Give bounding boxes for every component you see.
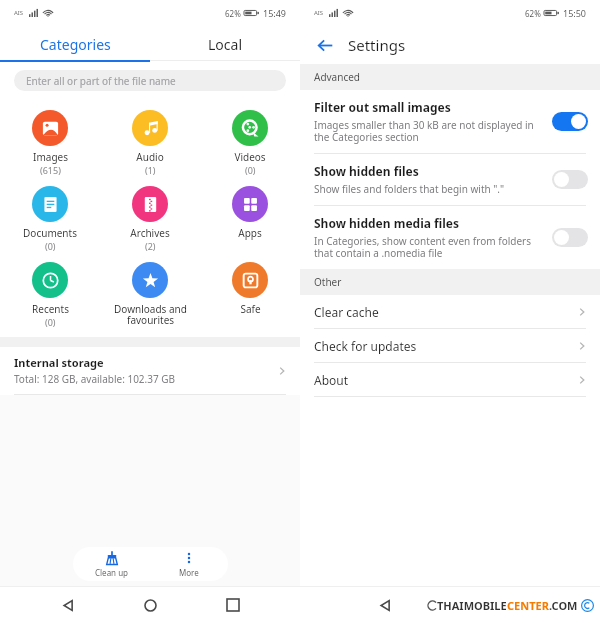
button[interactable]: Archives (100, 181, 200, 257)
button[interactable]: Back (370, 590, 400, 620)
staticText: 15:49 (263, 7, 287, 19)
button[interactable]: Recents (0, 257, 100, 333)
button[interactable]: Documents (0, 181, 100, 257)
staticText: Recents (32, 302, 69, 316)
staticText: Filter out small images (314, 99, 451, 115)
staticText: Safe (240, 302, 261, 316)
button[interactable]: Show hidden files (552, 170, 588, 189)
staticText: Clear cache (314, 304, 576, 320)
button[interactable]: Internal storage (0, 347, 300, 395)
staticText: Show hidden media files (314, 215, 460, 231)
staticText: Settings (348, 35, 406, 55)
staticText: (0) (245, 164, 256, 176)
staticText: Downloads and favourites (114, 302, 187, 327)
staticText: (0) (45, 316, 56, 328)
button[interactable]: Home (135, 590, 165, 620)
staticText: Enter all or part of the file name (26, 74, 176, 88)
staticText: (2) (145, 240, 156, 252)
button[interactable]: Clean up (73, 547, 150, 581)
staticText: (0) (45, 240, 56, 252)
button[interactable]: Audio (100, 105, 200, 181)
staticText: AIS (14, 9, 24, 17)
button[interactable]: Videos (200, 105, 300, 181)
button[interactable]: Categories (0, 26, 150, 62)
button[interactable]: Images (0, 105, 100, 181)
button[interactable]: Local (150, 26, 300, 62)
staticText: CENTER (507, 598, 549, 613)
staticText: AIS (314, 9, 324, 17)
button[interactable]: Clear cache (300, 295, 600, 329)
staticText: Internal storage (14, 355, 104, 370)
staticText: Check for updates (314, 338, 576, 354)
staticText: More (179, 567, 199, 578)
button[interactable]: Apps (200, 181, 300, 245)
staticText: Categories (40, 35, 111, 54)
button[interactable]: Filter out small images (300, 90, 600, 154)
staticText: Clean up (95, 567, 129, 578)
staticText: Archives (130, 226, 170, 240)
staticText: 62% (225, 8, 241, 19)
button[interactable]: Recents (218, 590, 248, 620)
button[interactable]: Enter all or part of the file name (14, 70, 286, 91)
staticText: Images smaller than 30 kB are not displa… (314, 118, 534, 144)
staticText: About (314, 372, 576, 388)
button[interactable]: Show hidden media files (552, 228, 588, 247)
staticText: Local (208, 35, 242, 54)
button[interactable]: Filter out small images (552, 112, 588, 131)
staticText: 15:50 (563, 7, 587, 19)
button[interactable]: Show hidden files (300, 154, 600, 206)
staticText: Advanced (314, 70, 360, 84)
staticText: .COM (549, 598, 578, 613)
button[interactable]: Safe (200, 257, 300, 321)
button[interactable]: About (300, 363, 600, 397)
button[interactable]: Back (314, 34, 336, 56)
staticText: Show files and folders that begin with "… (314, 182, 505, 196)
staticText: 62% (525, 8, 541, 19)
staticText: (615) (40, 164, 61, 176)
staticText: Images (33, 150, 68, 164)
staticText: Show hidden files (314, 163, 419, 179)
staticText: Total: 128 GB, available: 102.37 GB (14, 372, 176, 386)
staticText: Videos (234, 150, 266, 164)
staticText: (1) (145, 164, 156, 176)
button[interactable]: Show hidden media files (300, 206, 600, 269)
staticText: Documents (23, 226, 77, 240)
staticText: THAIMOBILE (437, 598, 507, 613)
staticText: Audio (136, 150, 164, 164)
button[interactable]: Check for updates (300, 329, 600, 363)
staticText: In Categories, show content even from fo… (314, 234, 532, 260)
button[interactable]: More (150, 547, 228, 581)
staticText: Apps (238, 226, 262, 240)
button[interactable]: Downloads and favourites (100, 257, 200, 332)
button[interactable]: Back (53, 590, 83, 620)
staticText: Other (314, 275, 342, 289)
